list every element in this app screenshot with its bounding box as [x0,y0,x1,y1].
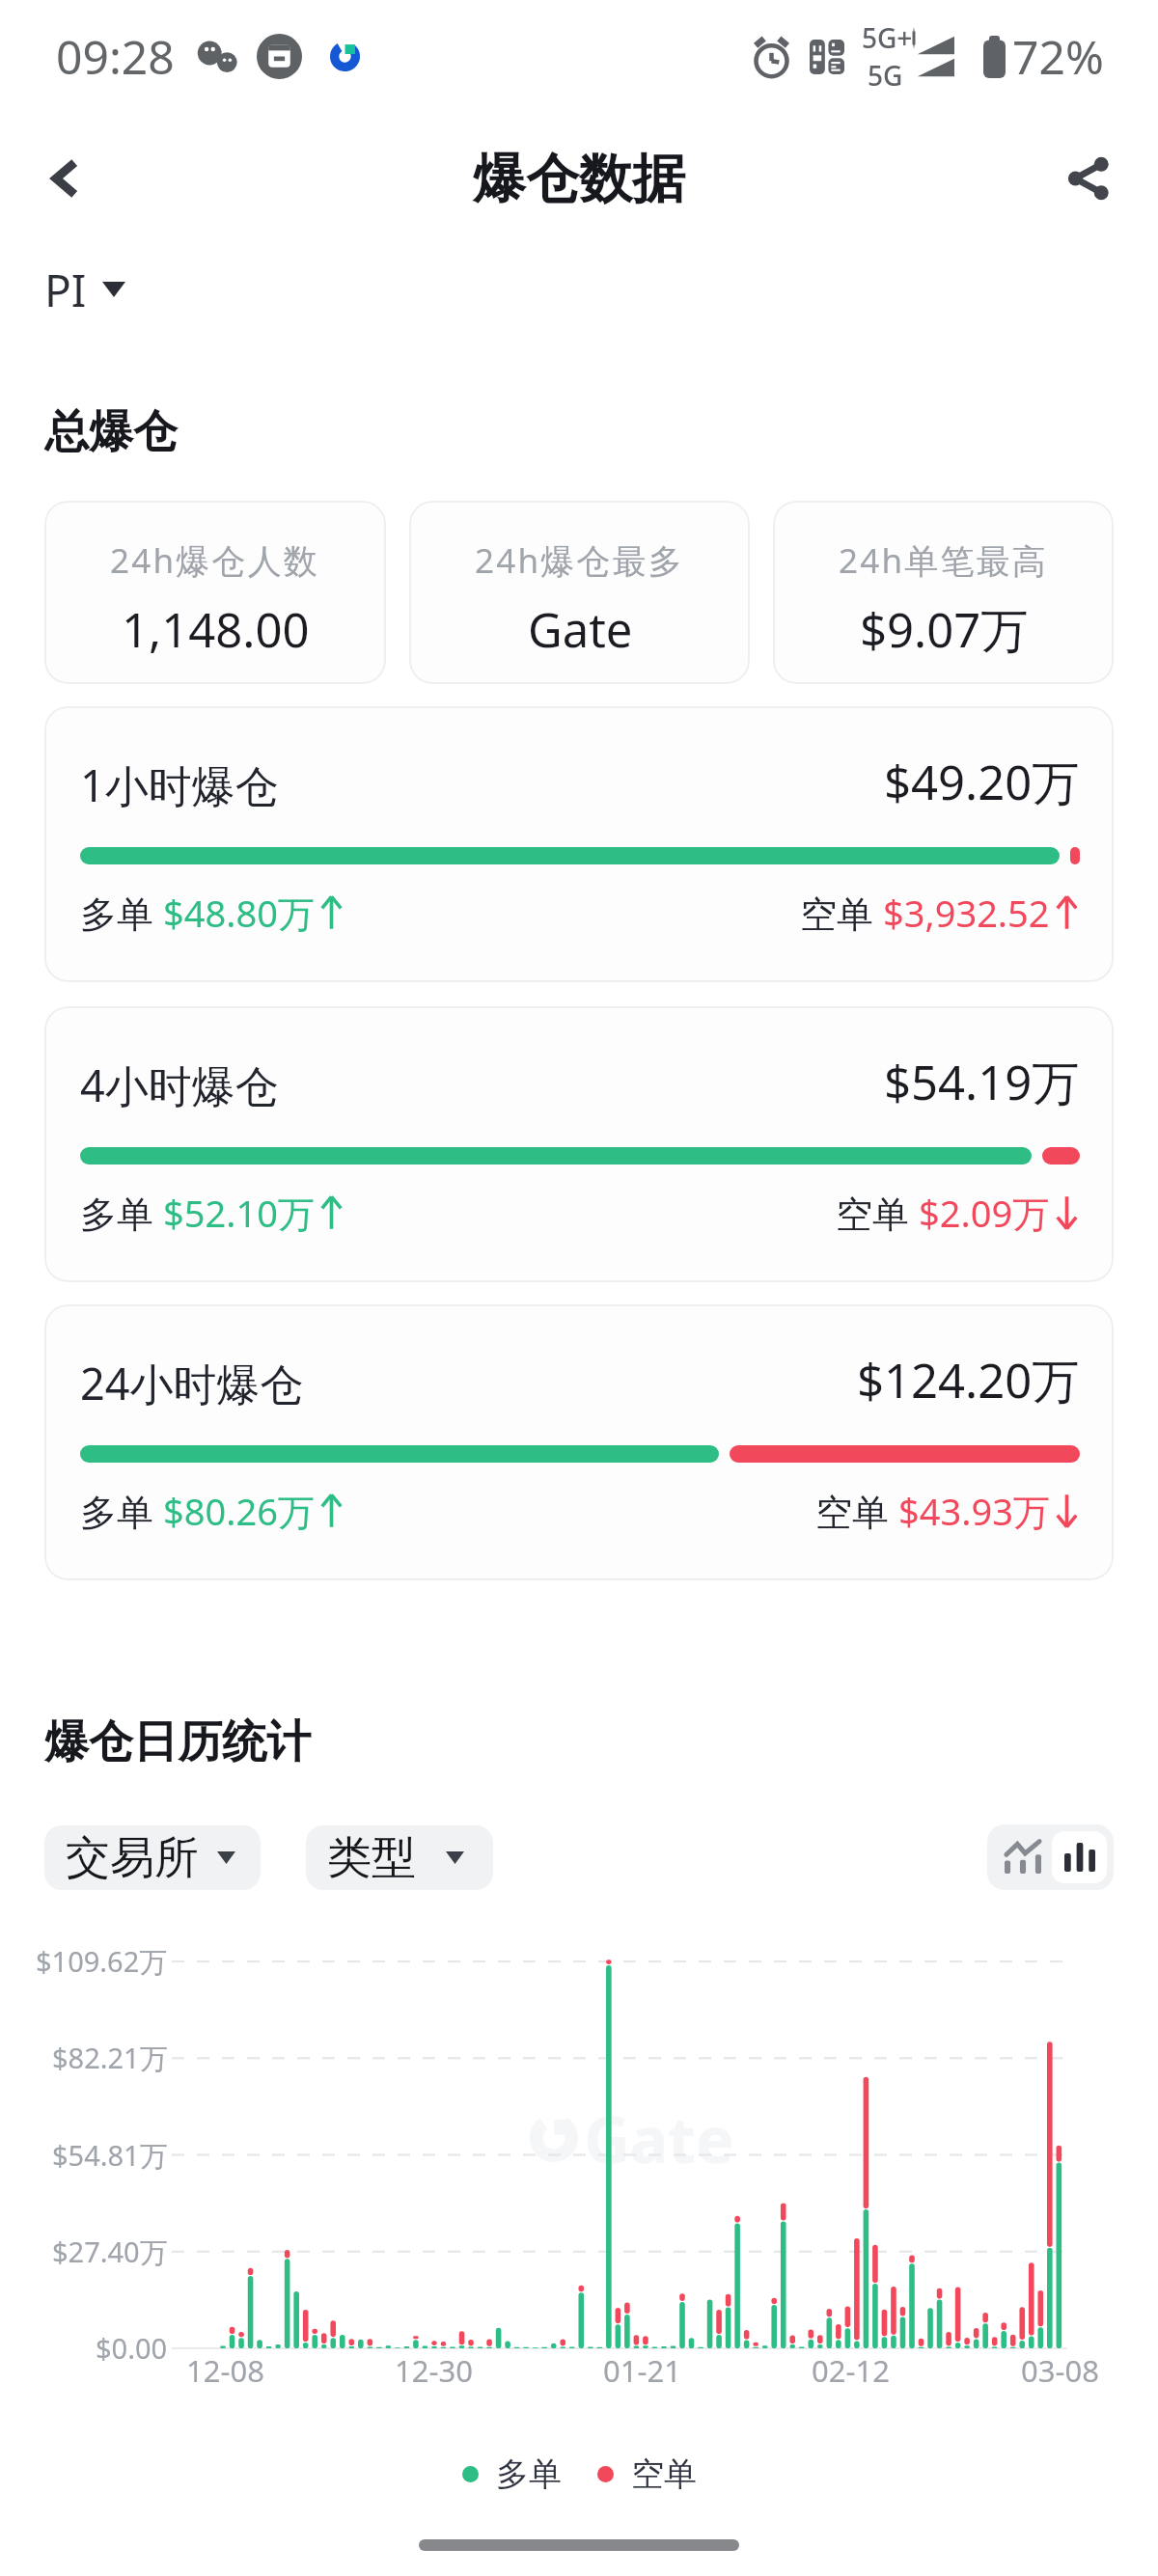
staticText: 交易所 [66,1830,199,1886]
button[interactable]: 交易所 [66,1825,261,1890]
button[interactable]: Share [1050,140,1127,217]
staticText: 12-30 [395,2350,473,2391]
staticText: 24h爆仓最多 [475,537,685,584]
staticText: 多单 [80,1188,163,1238]
staticText: 1小时爆仓 [80,755,279,814]
button[interactable]: Back [26,140,103,217]
staticText: $9.07万 [860,597,1029,662]
button[interactable]: 24h爆仓最多 [409,501,750,684]
staticText: 空单 [631,2453,697,2495]
staticText: $82.21万 [52,2039,168,2077]
staticText: 1,148.00 [122,597,310,662]
staticText: 01-21 [603,2350,681,2391]
staticText: 24h单笔最高 [839,537,1049,584]
staticText: $48.80万 [163,888,315,938]
staticText: 爆仓数据 [473,146,685,212]
staticText: 02-12 [812,2350,890,2391]
staticText: $49.20万 [884,750,1080,814]
staticText: 类型 [327,1830,416,1886]
staticText: Gate [584,2095,734,2181]
staticText: 空单 [815,1486,898,1536]
staticText: 多单 [80,1486,163,1536]
button[interactable]: 4小时爆仓 [44,1006,1114,1282]
staticText: 12-08 [186,2350,264,2391]
staticText: Gate [528,597,633,662]
staticText: 空单 [800,888,883,938]
staticText: $109.62万 [36,1942,168,1981]
staticText: 5G+ [862,19,913,56]
button[interactable]: Line chart [994,1831,1052,1883]
staticText: $27.40万 [52,2233,168,2271]
button[interactable]: 类型 [327,1825,493,1890]
staticText: 72% [1012,25,1104,88]
button[interactable]: 24h单笔最高 [773,501,1114,684]
staticText: 爆仓日历统计 [44,1714,311,1770]
staticText: $80.26万 [163,1486,315,1536]
staticText: $124.20万 [857,1348,1080,1412]
staticText: $2.09万 [919,1188,1050,1238]
staticText: 03-08 [1021,2350,1099,2391]
staticText: $43.93万 [898,1486,1050,1536]
staticText: 总爆仓 [44,404,178,460]
button[interactable]: 24小时爆仓 [44,1304,1114,1580]
button[interactable]: Bar chart [1052,1831,1107,1883]
staticText: $0.00 [96,2329,168,2367]
button[interactable]: 24h爆仓人数 [44,501,386,684]
staticText: $54.81万 [52,2136,168,2175]
staticText: $3,932.52 [883,888,1050,938]
staticText: 多单 [80,888,163,938]
staticText: PI [44,260,87,320]
staticText: 空单 [836,1188,919,1238]
button[interactable]: 1小时爆仓 [44,706,1114,982]
button[interactable]: PI [44,259,125,320]
staticText: $54.19万 [884,1050,1080,1114]
staticText: 24小时爆仓 [80,1354,304,1412]
staticText: 多单 [496,2453,562,2495]
staticText: 4小时爆仓 [80,1055,279,1114]
staticText: 24h爆仓人数 [110,537,320,584]
staticText: $52.10万 [163,1188,315,1238]
staticText: 5G [868,57,903,94]
staticText: 09:28 [56,25,175,88]
